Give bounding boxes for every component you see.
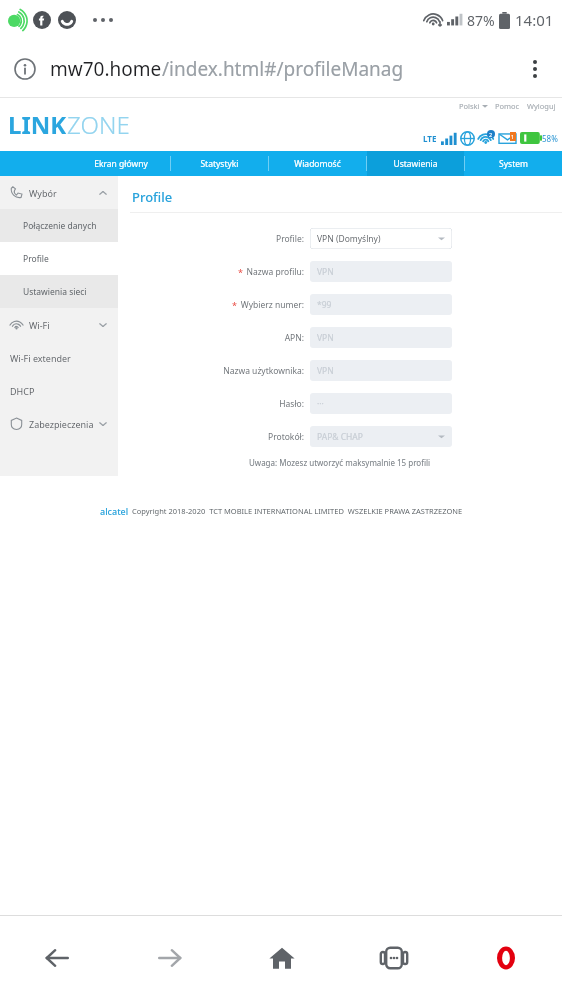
button[interactable]: PAP& CHAP <box>310 426 452 447</box>
staticText: APN: <box>284 332 304 344</box>
staticText: Wybór <box>29 187 98 199</box>
staticText: 2 <box>489 131 493 138</box>
staticText: Wiadomość <box>294 158 341 170</box>
button[interactable]: Ustawienia <box>367 151 464 176</box>
button[interactable]: Forward <box>113 916 226 999</box>
button[interactable]: DHCP <box>0 374 118 407</box>
staticText: VPN <box>317 365 334 377</box>
button[interactable]: Wi-Fi <box>0 308 118 341</box>
staticText: Profile <box>132 188 173 206</box>
button[interactable]: System <box>465 151 562 176</box>
staticText: VPN <box>317 332 334 344</box>
staticText: * <box>232 299 237 311</box>
staticText: ZONE <box>67 108 130 141</box>
staticText: Nazwa użytkownika: <box>223 365 304 377</box>
button[interactable]: Wyloguj <box>527 101 556 111</box>
button[interactable]: Pomoc <box>495 101 520 111</box>
staticText: Ekran główny <box>94 158 148 170</box>
button[interactable]: Tabs <box>338 916 450 999</box>
staticText: 14:01 <box>515 10 554 30</box>
button[interactable]: Wiadomość <box>269 151 366 176</box>
button[interactable]: Ustawienia sieci <box>0 275 118 308</box>
button[interactable]: *99 <box>310 294 452 315</box>
button[interactable]: Zabezpieczenia <box>0 407 118 440</box>
staticText: Połączenie danych mo... <box>23 220 118 232</box>
staticText: Wybierz numer: <box>240 299 304 311</box>
button[interactable]: Połączenie danych mo... <box>0 209 118 242</box>
button[interactable]: VPN <box>310 360 452 381</box>
button[interactable]: Back <box>0 916 113 999</box>
staticText: Wi-Fi <box>29 319 98 331</box>
button[interactable]: VPN <box>310 327 452 348</box>
button[interactable]: Opera menu <box>450 916 562 999</box>
staticText: Copyright 2018-2020 TCT MOBILE INTERNATI… <box>132 506 463 516</box>
staticText: LTE <box>423 133 437 144</box>
button[interactable]: Home <box>226 916 338 999</box>
staticText: Profile <box>23 253 49 265</box>
staticText: Ustawienia <box>393 158 438 170</box>
other: Site information <box>14 58 36 80</box>
staticText: Uwaga: Mozesz utworzyć maksymalnie 15 pr… <box>249 457 431 468</box>
staticText: ··· <box>317 398 324 410</box>
staticText: 87% <box>467 11 495 30</box>
button[interactable]: Profile <box>0 242 118 275</box>
staticText: Nazwa profilu: <box>246 266 304 278</box>
button[interactable]: Wi-Fi extender <box>0 341 118 374</box>
staticText: VPN (Domyślny) <box>317 233 381 245</box>
staticText: Hasło: <box>279 398 304 410</box>
button[interactable]: VPN (Domyślny) <box>310 228 452 249</box>
button[interactable]: More options <box>522 51 548 87</box>
staticText: PAP& CHAP <box>317 431 363 443</box>
staticText: System <box>499 158 528 170</box>
staticText: Polski <box>459 101 480 111</box>
staticText: LINK <box>8 108 67 141</box>
button[interactable]: Polski <box>459 101 488 111</box>
button[interactable]: Site information <box>0 40 562 97</box>
staticText: DHCP <box>10 385 35 397</box>
staticText: mw70.home <box>50 56 162 82</box>
button[interactable]: Ekran główny <box>72 151 170 176</box>
staticText: Wi-Fi extender <box>10 352 71 364</box>
button[interactable]: Wybór <box>0 176 118 209</box>
staticText: 1 <box>511 133 515 140</box>
staticText: Profile: <box>275 233 304 245</box>
staticText: Protokół: <box>268 431 304 443</box>
button[interactable]: Statystyki <box>171 151 268 176</box>
staticText: Ustawienia sieci <box>23 286 87 298</box>
staticText: *99 <box>317 299 332 311</box>
staticText: /index.html#/profileManag <box>162 56 404 82</box>
staticText: * <box>238 266 243 278</box>
button[interactable]: VPN <box>310 261 452 282</box>
staticText: Zabezpieczenia <box>29 418 98 430</box>
staticText: alcatel <box>100 505 129 517</box>
staticText: 58% <box>542 133 558 144</box>
staticText: VPN <box>317 266 334 278</box>
staticText: Statystyki <box>200 158 239 170</box>
